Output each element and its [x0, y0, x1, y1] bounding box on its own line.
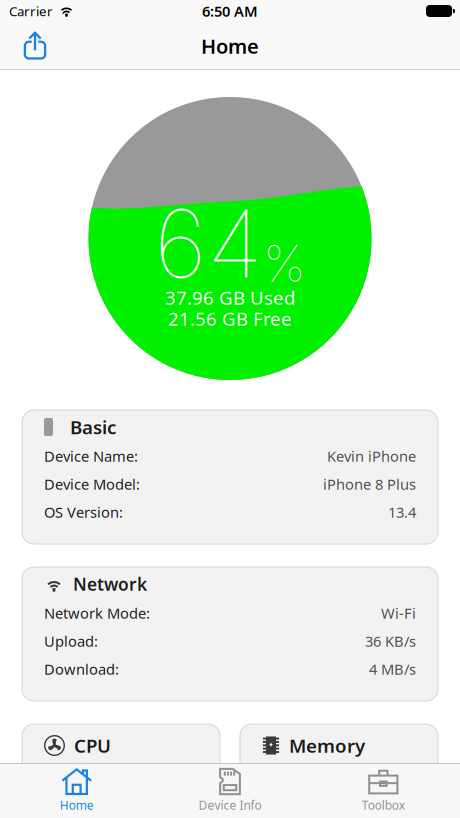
- staticText: CPU: [74, 733, 111, 758]
- staticText: 4 MB/s: [369, 659, 416, 679]
- staticText: Device Model:: [44, 474, 140, 494]
- staticText: Device Name:: [44, 446, 138, 466]
- staticText: 36 KB/s: [365, 631, 416, 651]
- staticText: Memory: [289, 733, 365, 758]
- staticText: Kevin iPhone: [327, 446, 416, 466]
- staticText: Upload:: [44, 631, 98, 651]
- staticText: Download:: [44, 659, 119, 679]
- staticText: 37.96 GB Used: [165, 285, 295, 310]
- staticText: Basic: [70, 415, 116, 439]
- staticText: Network: [73, 572, 147, 595]
- staticText: 13.4: [388, 502, 416, 522]
- staticText: Home: [60, 797, 94, 813]
- button[interactable]: Device Info: [153, 762, 307, 818]
- staticText: Network Mode:: [44, 603, 150, 623]
- staticText: %: [263, 233, 306, 294]
- staticText: iPhone 8 Plus: [323, 474, 416, 494]
- staticText: Wi-Fi: [381, 603, 416, 623]
- staticText: Carrier: [9, 2, 53, 20]
- button[interactable]: Share: [0, 26, 60, 70]
- staticText: 21.56 GB Free: [168, 306, 292, 331]
- staticText: 64: [154, 187, 263, 300]
- staticText: 6:50 AM: [202, 1, 258, 21]
- button[interactable]: Home: [0, 762, 153, 818]
- button[interactable]: Toolbox: [307, 762, 460, 818]
- staticText: Toolbox: [362, 797, 405, 813]
- staticText: Device Info: [198, 797, 261, 813]
- staticText: Home: [201, 33, 259, 59]
- staticText: OS Version:: [44, 502, 123, 522]
